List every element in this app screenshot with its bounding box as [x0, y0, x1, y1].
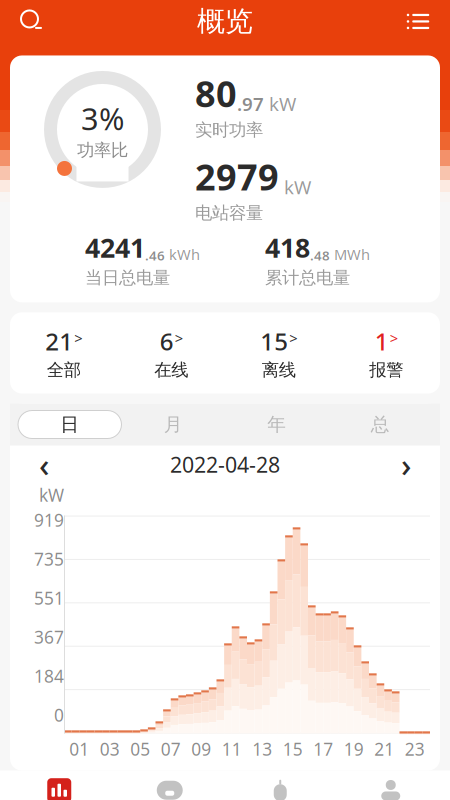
staticText: .97	[237, 91, 264, 116]
button[interactable]: 6	[117, 321, 225, 384]
staticText: 09	[191, 737, 211, 760]
staticText: 1	[375, 325, 389, 357]
staticText: kW	[39, 483, 64, 506]
staticText: 月	[164, 413, 183, 436]
button[interactable]: 1	[332, 321, 440, 384]
staticText: >	[390, 328, 398, 348]
staticText: .48	[310, 246, 330, 264]
staticText: 3%	[81, 98, 124, 139]
staticText: 551	[34, 586, 64, 609]
staticText: 2979	[195, 152, 279, 200]
staticText: 功率比	[77, 140, 128, 161]
button[interactable]: 报警	[225, 772, 335, 800]
staticText: .46	[145, 246, 165, 264]
staticText: 4241	[85, 230, 145, 265]
staticText: 23	[405, 737, 425, 760]
staticText: kW	[264, 91, 296, 116]
staticText: 累计总电量	[265, 267, 350, 288]
button[interactable]: 上一天	[22, 446, 66, 482]
staticText: 15	[283, 737, 303, 760]
staticText: >	[74, 328, 82, 348]
staticText: 03	[100, 737, 120, 760]
button[interactable]: 电站	[114, 772, 225, 800]
staticText: 735	[34, 547, 64, 570]
button[interactable]: 菜单	[396, 0, 440, 43]
staticText: 13	[252, 737, 272, 760]
staticText: 概览	[197, 4, 253, 39]
staticText: 80	[195, 69, 237, 117]
staticText: >	[175, 328, 183, 348]
button[interactable]: 搜索	[10, 0, 54, 43]
button[interactable]: 年	[225, 410, 328, 438]
staticText: 全部	[47, 359, 81, 380]
button[interactable]: 总	[328, 410, 432, 438]
staticText: 17	[313, 737, 333, 760]
staticText: ›	[401, 443, 411, 486]
staticText: ‹	[39, 443, 49, 486]
staticText: 0	[54, 703, 64, 726]
button[interactable]: 21	[10, 321, 117, 384]
staticText: 总	[371, 413, 390, 436]
staticText: 21	[374, 737, 394, 760]
staticText: 15	[260, 325, 288, 357]
staticText: 01	[69, 737, 89, 760]
staticText: 电站容量	[195, 202, 263, 224]
staticText: 6	[160, 325, 174, 357]
button[interactable]: 15	[225, 321, 332, 384]
staticText: 21	[45, 325, 73, 357]
button[interactable]: 日	[18, 410, 121, 438]
staticText: MWh	[330, 245, 370, 264]
staticText: 11	[222, 737, 242, 760]
staticText: kWh	[165, 245, 200, 264]
staticText: 184	[34, 664, 64, 687]
staticText: 在线	[154, 359, 188, 380]
button[interactable]: 下一天	[384, 446, 428, 482]
staticText: 当日总电量	[85, 267, 170, 288]
staticText: 418	[265, 230, 310, 265]
staticText: 年	[267, 413, 286, 436]
staticText: 实时功率	[195, 119, 263, 141]
staticText: 日	[60, 413, 79, 436]
staticText: 离线	[262, 359, 296, 380]
staticText: kW	[279, 175, 311, 199]
staticText: 2022-04-28	[170, 450, 280, 479]
staticText: >	[289, 328, 297, 348]
staticText: 07	[161, 737, 181, 760]
button[interactable]: 月	[121, 410, 225, 438]
button[interactable]: 概览	[4, 772, 114, 800]
staticText: 19	[344, 737, 364, 760]
staticText: 367	[34, 625, 64, 648]
button[interactable]: 我的	[335, 772, 446, 800]
staticText: 05	[130, 737, 150, 760]
staticText: 报警	[369, 359, 403, 380]
staticText: 919	[34, 508, 64, 531]
